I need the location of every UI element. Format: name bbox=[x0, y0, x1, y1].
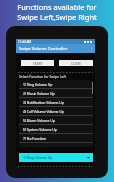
button[interactable]: CLOSE bbox=[59, 60, 93, 66]
button[interactable]: More options bbox=[89, 46, 94, 51]
button[interactable]: Swipe Volume Controller bbox=[16, 44, 95, 53]
staticText: 5) Alarm Volume Up bbox=[23, 118, 55, 123]
staticText: 4) Call Volume Volume Up bbox=[23, 109, 64, 114]
button[interactable]: 3) Notification Volume Up bbox=[19, 98, 93, 107]
staticText: START bbox=[33, 61, 43, 66]
button[interactable]: 2) Music Volume Up bbox=[19, 89, 93, 98]
staticText: Swipe Volume Controller bbox=[19, 46, 68, 52]
staticText: 1) Ring Volume Up bbox=[23, 82, 53, 87]
staticText: 7) No Function bbox=[23, 136, 47, 141]
staticText: 3) Notification Volume Up bbox=[23, 100, 64, 105]
staticText: 11:44 AM bbox=[18, 40, 32, 44]
button[interactable]: 5) Alarm Volume Up bbox=[19, 116, 93, 125]
staticText: 6) System Volume Up bbox=[23, 127, 57, 132]
staticText: Functions available for bbox=[17, 2, 97, 12]
button[interactable]: START bbox=[21, 60, 54, 66]
button[interactable]: 1) Ring Volume Up bbox=[19, 153, 93, 162]
button[interactable]: 1) Ring Volume Up bbox=[19, 80, 93, 89]
staticText: Select Function for Swipe Left bbox=[19, 74, 66, 79]
staticText: CLOSE bbox=[71, 61, 82, 66]
button[interactable]: 4) Call Volume Volume Up bbox=[19, 107, 93, 116]
staticText: Swipe Left,Swipe Right bbox=[17, 12, 97, 22]
staticText: 1) Ring Volume Up bbox=[23, 155, 53, 160]
button[interactable]: 7) No Function bbox=[19, 134, 93, 143]
button[interactable]: 6) System Volume Up bbox=[19, 125, 93, 134]
staticText: 2) Music Volume Up bbox=[23, 91, 55, 96]
